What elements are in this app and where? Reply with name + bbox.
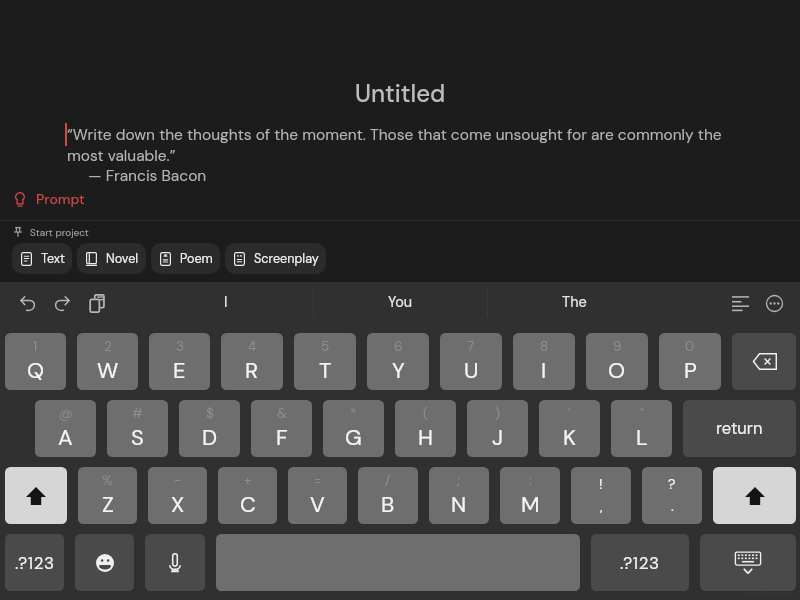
staticText: )	[495, 405, 501, 423]
staticText: N	[451, 490, 467, 519]
button[interactable]: Voice input	[145, 534, 205, 591]
button[interactable]: ;	[429, 467, 489, 524]
staticText: V	[310, 490, 325, 519]
button[interactable]: :	[500, 467, 560, 524]
button[interactable]: )	[467, 400, 528, 457]
staticText: “Write down the thoughts of the moment. …	[67, 125, 729, 165]
staticText: X	[171, 490, 185, 519]
button[interactable]: More options	[757, 286, 791, 320]
button[interactable]: (	[395, 400, 456, 457]
button[interactable]: 6	[367, 333, 429, 390]
button[interactable]: 2	[77, 333, 138, 390]
staticText: 2	[104, 338, 112, 356]
staticText: J	[492, 423, 504, 452]
button[interactable]: Hide keyboard	[700, 534, 796, 591]
staticText: .?123	[620, 552, 660, 574]
button[interactable]: Shift	[5, 467, 67, 524]
button[interactable]: "	[611, 400, 672, 457]
button[interactable]: 7	[440, 333, 502, 390]
button[interactable]: %	[78, 467, 137, 524]
button[interactable]: *	[323, 400, 384, 457]
staticText: Text	[41, 251, 65, 267]
button[interactable]: You	[314, 282, 487, 323]
staticText: H	[418, 423, 433, 452]
staticText: ;	[457, 472, 461, 490]
staticText: Y	[392, 356, 405, 385]
button[interactable]: 3	[149, 333, 210, 390]
button[interactable]: Novel	[77, 243, 146, 274]
staticText: U	[464, 356, 479, 385]
button[interactable]: +	[218, 467, 277, 524]
staticText: .?123	[15, 552, 55, 574]
staticText: +	[244, 472, 252, 490]
staticText: 3	[176, 338, 184, 356]
staticText: — Francis Bacon	[88, 166, 207, 186]
button[interactable]: I	[139, 282, 313, 323]
button[interactable]: $	[179, 400, 240, 457]
button[interactable]: Backspace	[732, 333, 796, 390]
staticText: M	[521, 490, 540, 519]
button[interactable]: 9	[586, 333, 648, 390]
staticText: P	[684, 356, 697, 385]
staticText: 1	[33, 338, 38, 356]
staticText: 7	[467, 338, 475, 356]
staticText: (	[423, 405, 429, 423]
staticText: &	[277, 405, 287, 423]
button[interactable]: #	[107, 400, 168, 457]
button[interactable]: Emoji	[75, 534, 134, 591]
button[interactable]: 0	[659, 333, 721, 390]
staticText: Poem	[180, 251, 213, 267]
button[interactable]: -	[148, 467, 207, 524]
staticText: ?	[668, 475, 676, 493]
staticText: The	[562, 293, 587, 312]
button[interactable]: Paste	[80, 286, 115, 320]
button[interactable]: .?123	[591, 534, 689, 591]
button[interactable]: 4	[221, 333, 283, 390]
staticText: %	[102, 472, 113, 490]
button[interactable]: Text	[12, 243, 72, 274]
staticText: I	[224, 293, 228, 312]
staticText: *	[350, 405, 357, 423]
button[interactable]: =	[288, 467, 347, 524]
staticText: 6	[394, 338, 403, 356]
button[interactable]: Poem	[151, 243, 220, 274]
staticText: F	[276, 423, 288, 452]
staticText: You	[388, 293, 413, 312]
button[interactable]: /	[358, 467, 418, 524]
staticText: Z	[102, 490, 114, 519]
button[interactable]: Undo	[10, 286, 45, 320]
button[interactable]: Prompt	[13, 188, 87, 210]
staticText: ,	[600, 497, 603, 515]
staticText: I	[541, 356, 547, 385]
staticText: "	[640, 405, 644, 423]
button[interactable]: The	[488, 282, 661, 323]
button[interactable]: Screenplay	[225, 243, 326, 274]
staticText: W	[97, 356, 119, 385]
button[interactable]: &	[251, 400, 312, 457]
staticText: Prompt	[36, 190, 85, 208]
staticText: C	[240, 490, 256, 519]
button[interactable]: Formatting	[723, 286, 757, 320]
staticText: wsxidn.com	[742, 588, 792, 600]
staticText: Screenplay	[254, 251, 319, 267]
staticText: $	[206, 405, 214, 423]
button[interactable]: 1	[5, 333, 66, 390]
staticText: B	[381, 490, 395, 519]
button[interactable]: @	[35, 400, 96, 457]
button[interactable]: !	[571, 467, 631, 524]
button[interactable]: '	[539, 400, 600, 457]
staticText: L	[636, 423, 648, 452]
button[interactable]: return	[683, 400, 796, 457]
button[interactable]: 8	[513, 333, 575, 390]
staticText: 5	[321, 338, 330, 356]
button[interactable]: Redo	[45, 286, 80, 320]
button[interactable]: ?	[642, 467, 702, 524]
button[interactable]: Shift	[713, 467, 796, 524]
button[interactable]: .?123	[5, 534, 64, 591]
button[interactable]: 5	[294, 333, 356, 390]
staticText: A	[58, 423, 73, 452]
staticText: Novel	[106, 251, 139, 267]
staticText: =	[314, 472, 322, 490]
staticText: T	[319, 356, 332, 385]
